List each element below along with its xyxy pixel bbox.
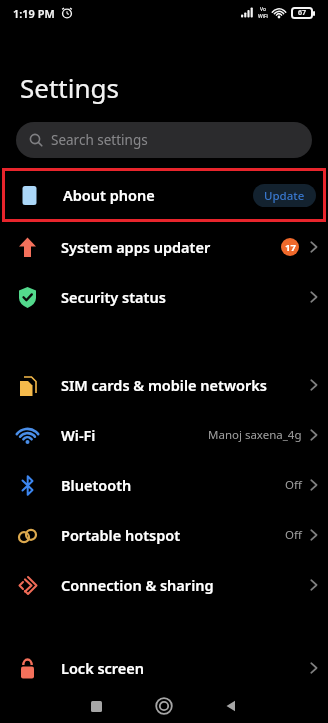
staticText: System apps updater (61, 237, 211, 257)
button[interactable]: Update (253, 184, 316, 207)
button[interactable]: Bluetooth (0, 460, 328, 510)
button[interactable] (91, 701, 102, 712)
staticText: Wi-Fi (61, 425, 96, 445)
staticText: About phone (63, 185, 155, 205)
button[interactable]: SIM cards & mobile networks (0, 360, 328, 410)
staticText: Manoj saxena_4g (208, 427, 302, 443)
button[interactable]: About phone (2, 168, 326, 222)
staticText: 67 (298, 8, 307, 18)
button[interactable] (224, 699, 238, 713)
button[interactable]: Search settings (16, 122, 312, 158)
button[interactable]: Wi-Fi (0, 410, 328, 460)
staticText: SIM cards & mobile networks (61, 375, 267, 395)
staticText: Lock screen (61, 658, 145, 678)
staticText: Search settings (51, 131, 148, 149)
staticText: Off (285, 477, 302, 493)
button[interactable]: Lock screen (0, 643, 328, 693)
button[interactable] (155, 697, 173, 715)
button[interactable]: System apps updater (0, 222, 328, 272)
staticText: Security status (61, 287, 166, 307)
staticText: Off (285, 527, 302, 543)
button[interactable]: Portable hotspot (0, 510, 328, 560)
staticText: Portable hotspot (61, 525, 181, 545)
staticText: Vo (260, 6, 266, 13)
staticText: Update (264, 188, 305, 204)
staticText: Settings (20, 70, 119, 105)
button[interactable]: Security status (0, 272, 328, 322)
staticText: WiFi (258, 13, 268, 20)
staticText: 17 (285, 241, 296, 254)
staticText: Bluetooth (61, 475, 132, 495)
staticText: 1:19 PM (13, 6, 55, 21)
staticText: Connection & sharing (61, 575, 214, 595)
button[interactable]: Connection & sharing (0, 560, 328, 610)
